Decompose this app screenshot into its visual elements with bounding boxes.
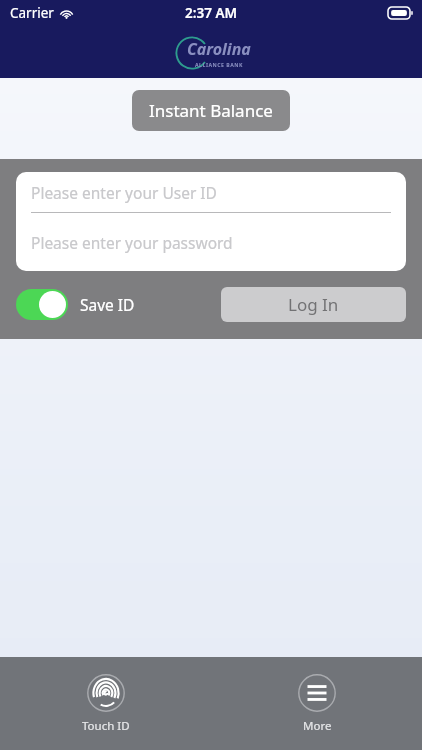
staticText: 2:37 AM <box>185 4 238 22</box>
staticText: Please enter your password <box>31 232 233 253</box>
button[interactable]: Instant Balance <box>132 90 290 131</box>
button[interactable]: Please enter your User ID <box>16 172 406 212</box>
staticText: Touch ID <box>82 718 130 734</box>
button[interactable]: Touch ID <box>64 670 148 738</box>
button[interactable]: More <box>280 670 354 738</box>
staticText: Log In <box>288 293 339 316</box>
button[interactable]: Log In <box>221 287 406 322</box>
staticText: More <box>303 718 332 734</box>
staticText: Carolina <box>187 38 251 60</box>
button[interactable]: Save ID toggle, on <box>16 289 135 320</box>
staticText: Instant Balance <box>149 99 273 122</box>
staticText: Please enter your User ID <box>31 182 217 203</box>
staticText: Save ID <box>80 294 135 315</box>
button[interactable]: Please enter your password <box>16 213 406 271</box>
other: Save ID toggle, on <box>16 289 68 320</box>
staticText: Carrier <box>10 4 54 22</box>
staticText: ALLIANCE BANK <box>195 61 244 68</box>
